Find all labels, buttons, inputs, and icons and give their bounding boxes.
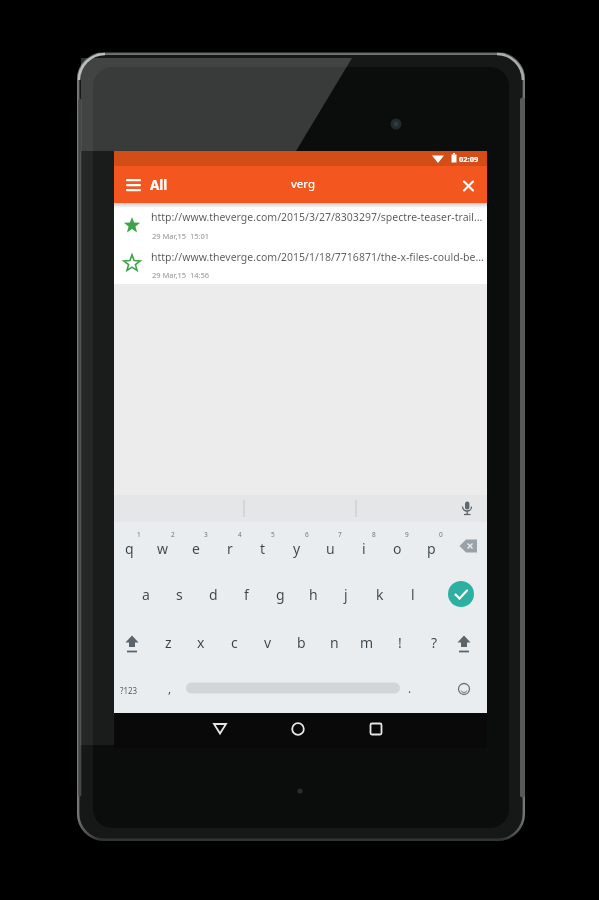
button[interactable]: r [215, 527, 245, 569]
button[interactable]: j [331, 573, 361, 615]
button[interactable] [202, 715, 238, 745]
button[interactable]: , [160, 678, 180, 698]
staticText: j [344, 585, 348, 604]
button[interactable]: k [365, 573, 395, 615]
button[interactable]: . [400, 678, 420, 698]
button[interactable] [452, 495, 482, 522]
staticText: h [309, 585, 318, 604]
staticText: s [176, 585, 183, 604]
button[interactable]: q [114, 527, 144, 569]
button[interactable]: n [319, 621, 349, 663]
button[interactable]: i [349, 527, 379, 569]
button[interactable]: o [382, 527, 412, 569]
staticText: 0 [439, 530, 443, 539]
button[interactable]: v [253, 621, 283, 663]
staticText: n [330, 633, 339, 652]
button[interactable]: b [286, 621, 316, 663]
staticText: 2 [171, 530, 175, 539]
staticText: v [264, 633, 272, 652]
staticText: t [260, 539, 266, 558]
staticText: 4 [238, 530, 242, 539]
staticText: All [150, 176, 168, 194]
button[interactable]: w [148, 527, 178, 569]
button[interactable]: ? [419, 621, 449, 663]
button[interactable] [280, 715, 316, 745]
staticText: 5 [271, 530, 275, 539]
staticText: 29 Mar,15 14:56 [152, 270, 210, 280]
staticText: ?123 [120, 685, 138, 696]
staticText: w [157, 539, 169, 558]
staticText: k [376, 585, 384, 604]
staticText: x [197, 633, 205, 652]
staticText: 7 [338, 530, 342, 539]
button[interactable]: g [265, 573, 295, 615]
button[interactable]: d [198, 573, 228, 615]
button[interactable] [446, 579, 476, 609]
button[interactable] [454, 171, 482, 199]
staticText: 9 [405, 530, 409, 539]
staticText: y [293, 539, 301, 558]
button[interactable]: f [231, 573, 261, 615]
staticText: b [297, 633, 306, 652]
button[interactable]: a [131, 573, 161, 615]
staticText: . [408, 680, 412, 696]
button[interactable]: y [282, 527, 312, 569]
button[interactable]: m [352, 621, 382, 663]
staticText: l [411, 585, 415, 604]
staticText: z [165, 633, 172, 652]
button[interactable] [186, 678, 400, 698]
button[interactable] [117, 621, 147, 663]
staticText: r [227, 539, 233, 558]
staticText: 3 [204, 530, 208, 539]
staticText: o [393, 539, 402, 558]
staticText: http://www.theverge.com/2015/3/27/830329… [151, 210, 483, 224]
staticText: f [244, 585, 249, 604]
staticText: verg [291, 176, 316, 192]
staticText: 8 [372, 530, 376, 539]
staticText: p [427, 539, 436, 558]
button[interactable] [114, 245, 487, 284]
button[interactable]: ?123 [116, 680, 142, 700]
staticText: http://www.theverge.com/2015/1/18/771687… [151, 250, 484, 264]
staticText: u [326, 539, 335, 558]
staticText: e [192, 539, 200, 558]
staticText: , [168, 680, 172, 696]
staticText: c [231, 633, 238, 652]
button[interactable] [114, 203, 487, 245]
button[interactable]: h [298, 573, 328, 615]
button[interactable]: z [153, 621, 183, 663]
button[interactable]: x [186, 621, 216, 663]
staticText: i [362, 539, 366, 558]
staticText: 29 Mar,15 15:01 [152, 231, 210, 241]
button[interactable]: e [181, 527, 211, 569]
button[interactable] [358, 715, 394, 745]
button[interactable] [120, 171, 148, 199]
staticText: ! [398, 633, 402, 652]
staticText: a [142, 585, 150, 604]
button[interactable]: t [248, 527, 278, 569]
button[interactable]: c [219, 621, 249, 663]
staticText: 02:09 [459, 154, 479, 164]
staticText: m [360, 633, 374, 652]
staticText: q [125, 539, 134, 558]
button[interactable] [449, 621, 479, 663]
button[interactable]: p [416, 527, 446, 569]
button[interactable]: s [164, 573, 194, 615]
button[interactable] [453, 527, 483, 569]
staticText: ? [431, 633, 438, 652]
button[interactable] [449, 673, 479, 705]
staticText: 6 [305, 530, 309, 539]
staticText: d [209, 585, 218, 604]
staticText: g [276, 585, 285, 604]
button[interactable]: u [315, 527, 345, 569]
button[interactable]: l [398, 573, 428, 615]
staticText: 1 [137, 530, 141, 539]
button[interactable]: ! [385, 621, 415, 663]
